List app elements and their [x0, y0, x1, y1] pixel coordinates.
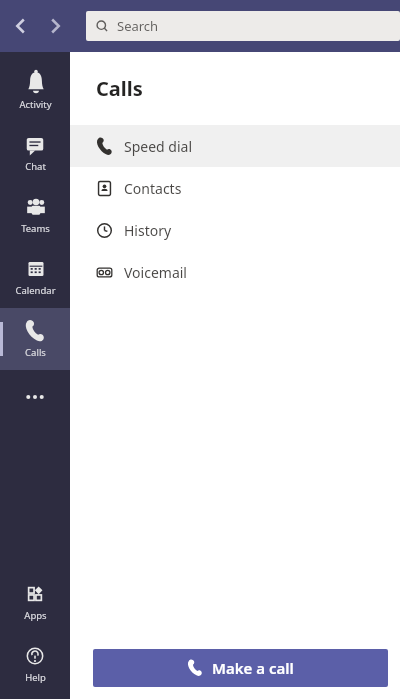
staticText: History — [124, 221, 172, 240]
staticText: Chat — [25, 160, 46, 173]
staticText: Teams — [21, 222, 50, 235]
staticText: Voicemail — [124, 263, 187, 282]
staticText: Calls — [96, 75, 143, 102]
staticText: Make a call — [212, 658, 294, 678]
button[interactable]: Activity — [0, 60, 70, 122]
staticText: Help — [25, 671, 46, 684]
staticText: Speed dial — [124, 137, 193, 156]
button[interactable]: Calls — [0, 308, 70, 370]
button[interactable]: Help — [0, 633, 70, 695]
button[interactable]: Contacts — [70, 167, 400, 209]
button[interactable]: Calendar — [0, 246, 70, 308]
button[interactable]: Chat — [0, 122, 70, 184]
button[interactable]: Forward — [38, 9, 72, 43]
button[interactable]: Back — [4, 9, 38, 43]
button[interactable]: More options — [0, 370, 70, 424]
staticText: Activity — [19, 98, 52, 111]
staticText: Search — [117, 17, 159, 35]
staticText: Apps — [24, 609, 47, 622]
staticText: Calendar — [15, 284, 56, 297]
button[interactable]: Teams — [0, 184, 70, 246]
button[interactable]: History — [70, 209, 400, 251]
button[interactable]: Speed dial — [70, 125, 400, 167]
button[interactable]: Make a call — [93, 649, 388, 687]
staticText: Calls — [25, 346, 46, 359]
button[interactable]: Voicemail — [70, 251, 400, 293]
staticText: Contacts — [124, 179, 182, 198]
button[interactable]: Apps — [0, 571, 70, 633]
button[interactable]: Search — [86, 11, 400, 41]
